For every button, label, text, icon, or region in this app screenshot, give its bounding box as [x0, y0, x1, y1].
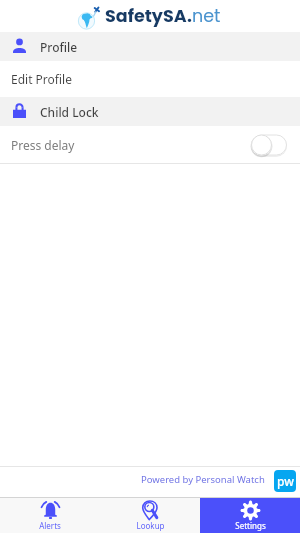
- staticText: Child Lock: [40, 104, 99, 120]
- staticText: Powered by Personal Watch: [141, 473, 265, 486]
- button[interactable]: Child Lock: [0, 97, 300, 126]
- button[interactable]: Settings: [200, 498, 300, 533]
- button[interactable]: Alerts: [0, 498, 100, 533]
- staticText: SafetySA: [105, 4, 187, 29]
- staticText: Edit Profile: [11, 71, 72, 87]
- staticText: Lookup: [136, 520, 165, 531]
- staticText: net: [192, 4, 221, 29]
- staticText: Press delay: [11, 137, 75, 153]
- button[interactable]: Press delay: [0, 126, 300, 163]
- staticText: Alerts: [39, 520, 61, 531]
- staticText: .: [187, 4, 192, 29]
- button[interactable]: Lookup: [100, 498, 200, 533]
- staticText: Settings: [235, 520, 266, 531]
- staticText: pw: [277, 473, 294, 489]
- staticText: Profile: [40, 39, 78, 55]
- button[interactable]: Profile: [0, 32, 300, 61]
- button[interactable]: Edit Profile: [0, 61, 300, 97]
